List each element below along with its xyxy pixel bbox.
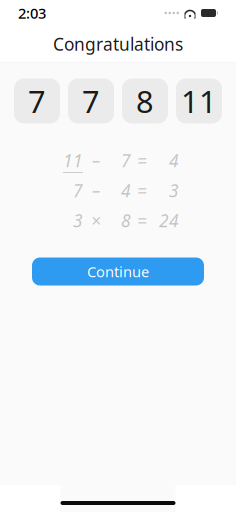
staticText: 8 — [121, 209, 131, 232]
staticText: 7 — [82, 81, 100, 121]
staticText: 7 — [121, 149, 131, 172]
staticText: 7 — [73, 179, 83, 202]
staticText: = — [137, 179, 147, 202]
staticText: Congratulations — [53, 32, 183, 55]
staticText: 11 — [63, 149, 83, 172]
staticText: 7 — [28, 81, 46, 121]
staticText: 3 — [73, 209, 83, 232]
staticText: 11 — [181, 81, 217, 121]
staticText: = — [137, 209, 147, 232]
staticText: 8 — [136, 81, 154, 121]
staticText: 4 — [121, 179, 131, 202]
staticText: = — [137, 149, 147, 172]
staticText: Continue — [87, 262, 149, 281]
staticText: – — [92, 149, 100, 172]
staticText: 4 — [169, 149, 179, 172]
staticText: × — [91, 209, 101, 232]
staticText: – — [92, 179, 100, 202]
staticText: 2:03 — [18, 3, 46, 23]
staticText: 3 — [169, 179, 179, 202]
button[interactable]: Continue — [32, 257, 204, 285]
staticText: 24 — [159, 209, 179, 232]
